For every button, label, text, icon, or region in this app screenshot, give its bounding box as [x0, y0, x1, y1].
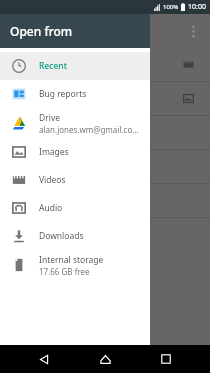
staticText: 10:00: [188, 2, 206, 12]
button[interactable]: Bug reports: [0, 80, 150, 108]
staticText: alan.jones.wm@gmail.co…: [39, 124, 139, 135]
staticText: Videos: [39, 174, 66, 186]
button[interactable]: Home: [88, 345, 122, 373]
staticText: Audio: [39, 202, 63, 214]
staticText: Downloads: [39, 230, 84, 242]
button[interactable]: Audio: [0, 194, 150, 222]
staticText: Recent: [39, 60, 67, 72]
staticText: 17.66 GB free: [39, 266, 90, 277]
button[interactable]: Internal storage: [0, 250, 150, 280]
staticText: Bug reports: [39, 88, 87, 100]
button[interactable]: More options: [176, 14, 210, 48]
button[interactable]: Recent apps: [149, 345, 183, 373]
staticText: Internal storage: [39, 254, 104, 266]
button[interactable]: Recent: [0, 52, 150, 80]
staticText: Drive: [39, 112, 61, 124]
button[interactable]: Drive: [0, 108, 150, 138]
button[interactable]: Downloads: [0, 222, 150, 250]
button[interactable]: Back: [27, 345, 61, 373]
staticText: 100%: [163, 3, 179, 11]
staticText: Open from: [10, 23, 73, 39]
button[interactable]: Videos: [0, 166, 150, 194]
staticText: Images: [39, 146, 69, 158]
button[interactable]: Images: [0, 138, 150, 166]
